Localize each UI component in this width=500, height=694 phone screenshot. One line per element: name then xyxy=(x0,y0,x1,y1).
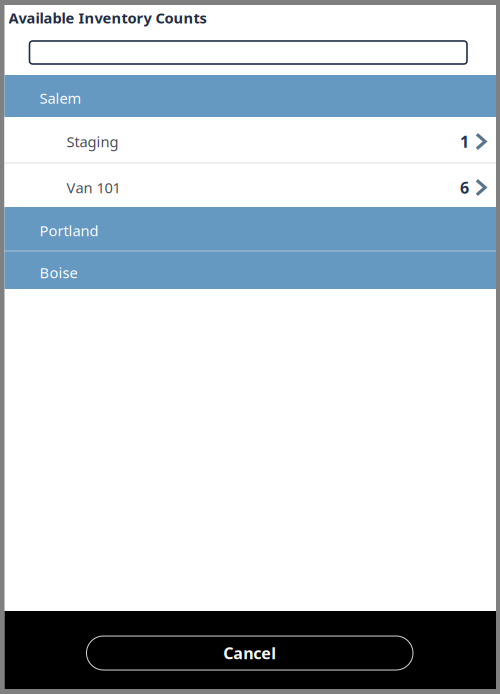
button[interactable]: Search inventory counts xyxy=(4,41,496,64)
button[interactable]: Van 101 xyxy=(4,164,496,207)
staticText: 1 xyxy=(460,131,469,152)
staticText: Van 101 xyxy=(66,178,120,197)
button[interactable]: Cancel xyxy=(4,611,496,689)
staticText: 6 xyxy=(460,177,469,198)
button[interactable]: Boise xyxy=(4,252,496,289)
button[interactable]: Portland xyxy=(4,207,496,250)
staticText: Available Inventory Counts xyxy=(8,8,206,27)
staticText: Portland xyxy=(39,221,98,240)
button[interactable]: Staging xyxy=(4,117,496,162)
staticText: Cancel xyxy=(223,642,276,664)
button[interactable]: Salem xyxy=(4,75,496,117)
staticText: Salem xyxy=(39,88,81,108)
staticText: Staging xyxy=(66,132,118,151)
staticText: Boise xyxy=(39,263,77,282)
